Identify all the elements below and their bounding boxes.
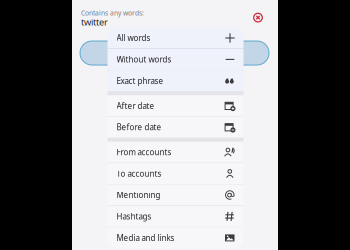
button[interactable]: From accounts (107, 142, 243, 163)
button[interactable]: Mentioning (107, 185, 243, 205)
button[interactable]: Media and links (107, 227, 243, 248)
staticText: Exact phrase (116, 75, 163, 86)
button[interactable]: All words (107, 28, 243, 48)
staticText: After date (116, 100, 154, 111)
button[interactable]: Exact phrase (107, 70, 243, 91)
staticText: Mentioning (116, 190, 160, 200)
staticText: Before date (116, 122, 161, 132)
staticText: All words (116, 33, 150, 43)
staticText: Media and links (116, 232, 174, 243)
button[interactable]: Before date (107, 117, 243, 138)
staticText: Without words (116, 54, 171, 65)
button[interactable]: To accounts (107, 163, 243, 184)
button[interactable]: After date (107, 95, 243, 116)
button[interactable]: Clear search field (250, 10, 266, 26)
button[interactable]: Without words (107, 49, 243, 70)
staticText: Contains any words: (81, 9, 144, 17)
staticText: Hashtags (116, 211, 151, 222)
button[interactable]: Hashtags (107, 206, 243, 227)
staticText: twitter (81, 16, 108, 28)
staticText: To accounts (116, 168, 161, 179)
staticText: From accounts (116, 147, 171, 157)
